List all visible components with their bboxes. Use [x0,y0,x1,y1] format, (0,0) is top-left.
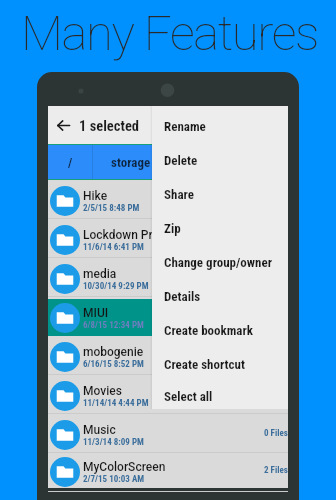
button[interactable]: Create bookmark [152,310,288,344]
staticText: Rename [164,119,206,134]
button[interactable]: Select all [152,378,288,409]
button[interactable]: mobogenie [48,336,288,375]
staticText: Select all [164,389,213,404]
staticText: Details [164,289,201,304]
staticText: Zip [164,221,181,236]
button[interactable]: Delete [152,140,288,174]
button[interactable]: Lockdown Pro [48,219,288,258]
staticText: Many Features [21,5,319,62]
button[interactable]: MyColorScreen [48,453,288,488]
staticText: Movies [83,384,122,398]
button[interactable]: / [48,145,92,179]
staticText: 6/16/15 8:52 PM [83,359,144,370]
staticText: storage [111,155,151,170]
button[interactable]: Create shortcut [152,344,288,378]
staticText: mobogenie [83,345,144,359]
staticText: / [68,155,73,170]
staticText: 2/7/15 10:03 AM [83,474,145,485]
button[interactable]: Rename [152,106,288,140]
button[interactable]: Hike [48,180,288,219]
staticText: 11/6/14 6:41 PM [83,242,144,253]
staticText: Hike [83,189,108,203]
button[interactable]: Movies [48,375,288,414]
staticText: Create shortcut [164,357,245,372]
staticText: 10/30/14 9:29 PM [83,281,149,292]
staticText: 1 selected [79,118,140,135]
staticText: 2/5/15 8:48 PM [83,203,140,214]
staticText: Music [83,423,116,437]
button[interactable]: Back [50,112,76,138]
staticText: 11/3/14 8:09 PM [83,437,144,448]
button[interactable]: media [48,258,288,297]
staticText: 6/8/15 12:34 PM [83,320,144,331]
staticText: 11/14/14 4:44 PM [83,398,149,409]
staticText: Create bookmark [164,323,254,338]
button[interactable]: storage [93,145,169,179]
staticText: 0 Files [264,428,288,439]
button[interactable]: Details [152,276,288,310]
staticText: Lockdown Pro [83,228,160,242]
button[interactable]: Share [152,174,288,208]
button[interactable]: Change group/owner [152,242,288,276]
staticText: 2 Files [264,465,288,476]
button[interactable]: Music [48,414,288,453]
staticText: Delete [164,153,198,168]
staticText: MIUI [83,306,109,320]
button[interactable]: Back [48,106,288,144]
button[interactable]: MIUI [48,297,288,336]
staticText: Change group/owner [164,255,272,270]
staticText: media [83,267,117,281]
staticText: Share [164,187,194,202]
staticText: MyColorScreen [83,460,166,474]
button[interactable]: Zip [152,208,288,242]
